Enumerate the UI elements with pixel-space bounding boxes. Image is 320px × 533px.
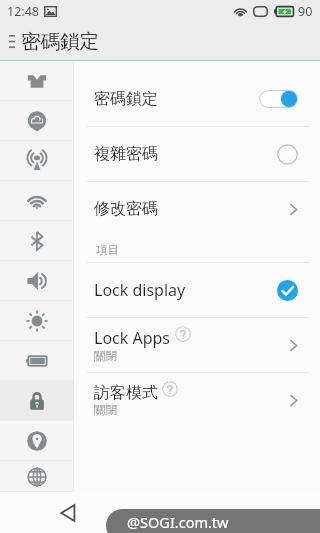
button[interactable]: Themes <box>0 61 73 101</box>
button[interactable]: Bluetooth <box>0 221 73 261</box>
staticText: 關閉 <box>94 349 117 363</box>
button[interactable]: Lock Apps <box>74 318 320 372</box>
button[interactable]: 複雜密碼 <box>74 127 320 181</box>
button[interactable]: 修改密碼 <box>74 182 320 236</box>
staticText: 12:48 <box>7 3 39 20</box>
button[interactable]: Wi-Fi <box>0 181 73 221</box>
button[interactable]: Language <box>0 461 73 492</box>
button[interactable]: Lock display <box>74 263 320 317</box>
staticText: 修改密碼 <box>94 199 158 219</box>
staticText: 訪客模式 <box>94 383 158 403</box>
button[interactable]: Cloud <box>0 101 73 141</box>
staticText: 密碼鎖定 <box>94 89 158 109</box>
staticText: 90 <box>298 3 313 20</box>
button[interactable]: Location <box>0 421 73 461</box>
button[interactable]: Mobile network <box>0 141 73 181</box>
button[interactable]: 密碼鎖定 <box>74 72 320 126</box>
staticText: 密碼鎖定 <box>21 29 99 54</box>
button[interactable]: Battery <box>0 341 73 381</box>
button[interactable]: Display <box>0 301 73 341</box>
staticText: Lock Apps <box>94 327 171 349</box>
button[interactable]: Sound <box>0 261 73 301</box>
button[interactable]: 訪客模式 <box>74 373 320 427</box>
button[interactable]: Lock screen <box>0 381 73 421</box>
staticText: 關閉 <box>94 403 117 417</box>
staticText: Lock display <box>94 279 186 301</box>
button[interactable]: Back <box>52 497 84 529</box>
button[interactable]: Menu <box>0 22 23 60</box>
staticText: 複雜密碼 <box>94 144 158 164</box>
staticText: 項目 <box>96 243 119 257</box>
staticText: @SOGI.com.tw <box>127 512 229 532</box>
